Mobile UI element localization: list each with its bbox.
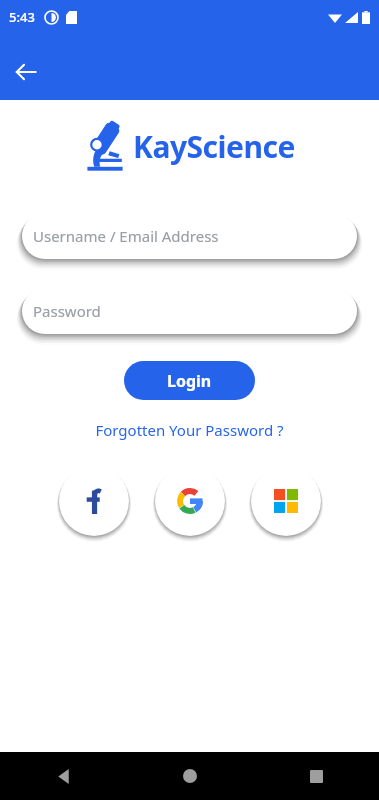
button[interactable]: Username / Email Address	[22, 213, 357, 259]
staticText: Forgotten Your Password ?	[95, 420, 284, 440]
button[interactable]: Home	[127, 752, 253, 800]
button[interactable]: Back	[0, 752, 127, 800]
button[interactable]: Login	[124, 361, 255, 400]
button[interactable]: Back	[6, 52, 46, 92]
button[interactable]: Forgotten Your Password ?	[89, 418, 290, 442]
staticText: Username / Email Address	[33, 226, 219, 246]
staticText: KayScience	[133, 126, 295, 167]
staticText: Password	[33, 301, 101, 321]
button[interactable]: Sign in with Facebook	[59, 466, 129, 536]
button[interactable]: Sign in with Microsoft	[251, 466, 321, 536]
button[interactable]: Recent apps	[253, 752, 379, 800]
button[interactable]: Password	[22, 288, 357, 334]
staticText: Login	[167, 370, 212, 392]
staticText: 5:43	[9, 8, 35, 26]
button[interactable]: Sign in with Google	[155, 466, 225, 536]
